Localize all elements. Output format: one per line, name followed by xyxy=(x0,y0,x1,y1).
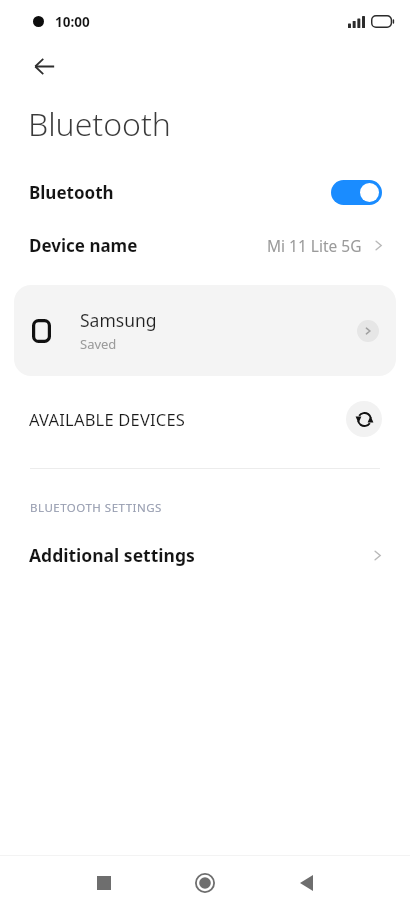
staticText: Mi 11 Lite 5G xyxy=(267,235,362,256)
staticText: BLUETOOTH SETTINGS xyxy=(30,500,162,516)
button[interactable]: Samsung xyxy=(14,285,396,376)
button[interactable]: Back xyxy=(26,48,62,84)
button[interactable]: Device name xyxy=(0,218,410,272)
staticText: Bluetooth xyxy=(28,102,171,146)
button[interactable]: Bluetooth xyxy=(0,166,410,218)
staticText: Device name xyxy=(29,234,138,257)
staticText: Bluetooth xyxy=(29,181,114,204)
staticText: Samsung xyxy=(80,308,157,332)
button[interactable]: Bluetooth on xyxy=(331,180,382,205)
staticText: Saved xyxy=(80,335,117,353)
button[interactable]: Refresh xyxy=(346,401,382,437)
button[interactable]: Device settings xyxy=(357,320,379,342)
button[interactable]: Back xyxy=(280,857,332,909)
staticText: Additional settings xyxy=(29,543,195,567)
staticText: 10:00 xyxy=(55,13,90,31)
button[interactable]: Recent apps xyxy=(78,857,130,909)
button[interactable]: Home xyxy=(179,857,231,909)
staticText: AVAILABLE DEVICES xyxy=(29,408,186,430)
button[interactable]: Additional settings xyxy=(0,533,410,577)
